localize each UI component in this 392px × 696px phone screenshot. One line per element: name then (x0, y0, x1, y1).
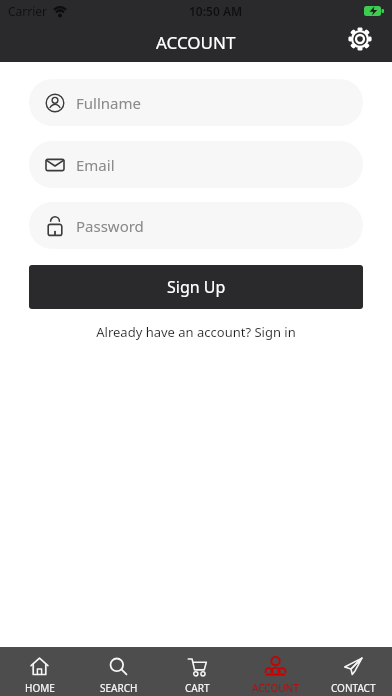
button[interactable]: CART (158, 647, 236, 696)
staticText: HOME (25, 681, 55, 695)
button[interactable]: CONTACT (314, 647, 392, 696)
staticText: 10:50 AM (189, 3, 243, 19)
staticText: Password (76, 216, 144, 236)
button[interactable]: Already have an account? Sign in (29, 323, 363, 341)
button[interactable]: ACCOUNT (236, 647, 314, 696)
button[interactable]: Fullname (29, 79, 363, 126)
staticText: CART (185, 681, 210, 695)
button[interactable]: HOME (0, 647, 79, 696)
staticText: Email (76, 155, 115, 175)
button[interactable] (342, 22, 378, 56)
staticText: ACCOUNT (156, 31, 236, 54)
staticText: ACCOUNT (252, 681, 299, 695)
staticText: Carrier (8, 3, 48, 19)
button[interactable]: Password (29, 202, 363, 249)
button[interactable]: Sign Up (29, 265, 363, 309)
button[interactable]: SEARCH (79, 647, 158, 696)
staticText: SEARCH (100, 681, 138, 695)
staticText: Fullname (76, 93, 141, 113)
staticText: CONTACT (331, 681, 376, 695)
staticText: Sign Up (167, 276, 226, 298)
button[interactable]: Email (29, 141, 363, 188)
